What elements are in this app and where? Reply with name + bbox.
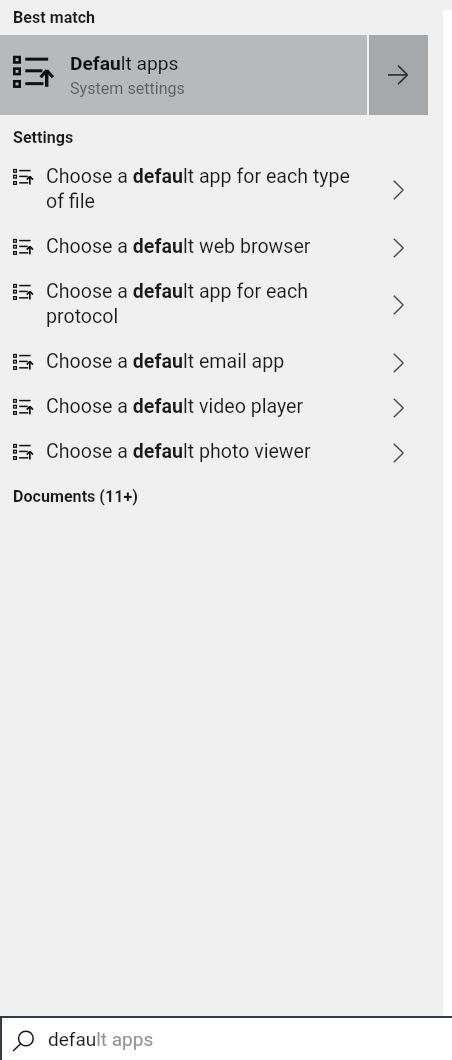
button[interactable]: Choose a default web browser (0, 225, 452, 270)
other: Search (11, 1027, 35, 1051)
staticText: System settings (70, 79, 185, 98)
button[interactable]: Default apps (0, 35, 367, 115)
staticText: Choose a default email app (46, 350, 285, 373)
staticText: Choose a default video player (46, 395, 304, 418)
button[interactable]: Choose a default photo viewer (0, 430, 452, 475)
button[interactable]: Choose a default app for each protocol (0, 270, 452, 340)
staticText: Default apps (70, 52, 179, 75)
button[interactable]: Open Default apps (369, 35, 428, 115)
staticText: Best match (13, 8, 96, 27)
button[interactable]: Choose a default app for each type of fi… (0, 155, 452, 225)
staticText: default apps (48, 1028, 154, 1050)
staticText: Choose a default photo viewer (46, 440, 311, 463)
button[interactable]: Choose a default video player (0, 385, 452, 430)
staticText: Choose a default app for each protocol (46, 280, 351, 328)
staticText: Choose a default app for each type of fi… (46, 165, 351, 213)
button[interactable]: Choose a default email app (0, 340, 452, 385)
staticText: Settings (13, 128, 74, 147)
button[interactable]: Search (2, 1018, 452, 1060)
staticText: Documents (11+) (13, 487, 138, 506)
staticText: Choose a default web browser (46, 235, 311, 258)
